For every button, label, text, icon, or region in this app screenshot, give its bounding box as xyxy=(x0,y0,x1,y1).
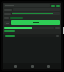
button[interactable] xyxy=(4,30,15,32)
button[interactable] xyxy=(11,20,60,25)
button[interactable] xyxy=(4,16,60,19)
button[interactable]: Quantity xyxy=(4,21,10,25)
button[interactable]: More xyxy=(56,35,59,37)
button[interactable]: Status B xyxy=(56,5,60,7)
button[interactable] xyxy=(4,26,60,29)
button[interactable]: Profile xyxy=(45,63,52,69)
button[interactable]: Status A xyxy=(4,4,60,7)
button[interactable]: Status A xyxy=(51,5,55,7)
button[interactable] xyxy=(4,12,60,15)
button[interactable] xyxy=(4,8,60,11)
button[interactable]: Home xyxy=(12,63,19,69)
button[interactable]: Search xyxy=(29,63,36,69)
button[interactable] xyxy=(5,35,15,37)
